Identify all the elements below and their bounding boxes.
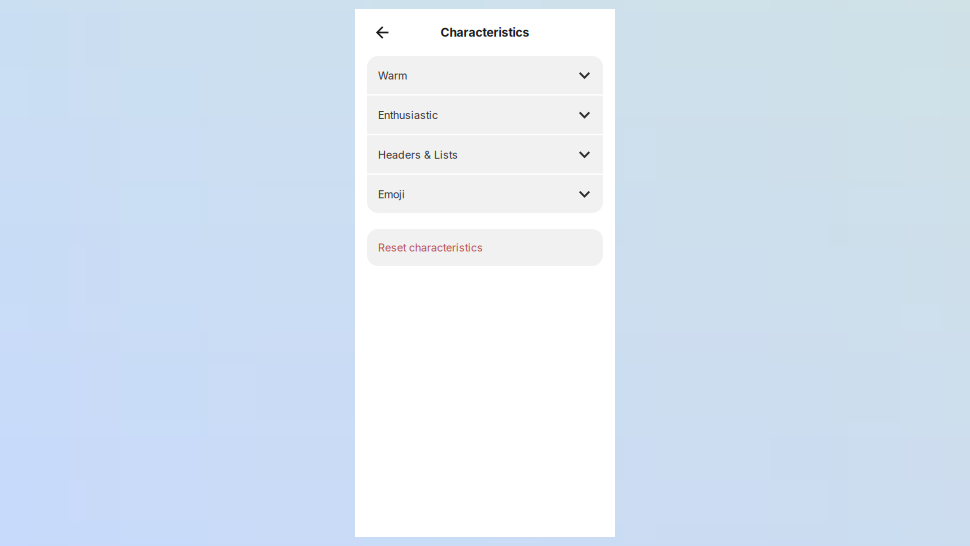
button[interactable]: Back <box>367 17 397 47</box>
staticText: Headers & Lists <box>378 148 458 161</box>
staticText: Emoji <box>378 188 405 201</box>
button[interactable]: Warm <box>367 56 603 94</box>
staticText: Characteristics <box>440 25 529 40</box>
staticText: Reset characteristics <box>378 241 483 254</box>
staticText: Enthusiastic <box>378 109 438 122</box>
button[interactable]: Enthusiastic <box>367 96 603 134</box>
button[interactable]: Reset characteristics <box>367 229 603 266</box>
button[interactable]: Emoji <box>367 175 603 213</box>
button[interactable]: Headers & Lists <box>367 135 603 173</box>
staticText: Warm <box>378 69 407 82</box>
